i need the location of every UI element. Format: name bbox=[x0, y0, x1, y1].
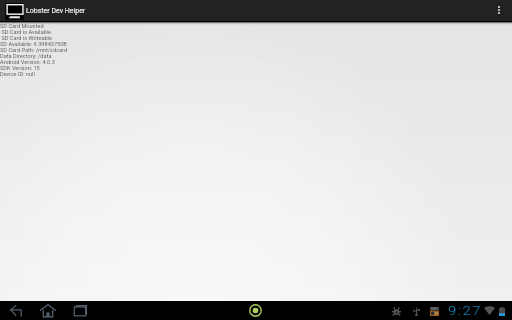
staticText: SD Available: 9.39843750B bbox=[0, 41, 67, 47]
staticText: Data Directory: /data bbox=[0, 53, 52, 59]
button[interactable]: Screen recording indicator bbox=[247, 301, 263, 320]
button[interactable]: Back bbox=[5, 301, 27, 320]
staticText: Lobster Dev Helper bbox=[26, 7, 86, 15]
staticText: SD Card is Writeable bbox=[0, 35, 52, 41]
button[interactable]: Home bbox=[40, 301, 56, 320]
staticText: SD Card Path: /mnt/sdcard bbox=[0, 47, 68, 53]
staticText: 9:27 bbox=[448, 304, 483, 318]
button[interactable]: More options bbox=[490, 0, 508, 21]
staticText: SD Card is Available bbox=[0, 29, 51, 35]
button[interactable]: Lobster Dev Helper, navigate up bbox=[0, 0, 512, 21]
staticText: Android Version: 4.0.3 bbox=[0, 59, 55, 65]
staticText: Device ID: null bbox=[0, 71, 35, 77]
button[interactable]: Recent apps bbox=[73, 301, 87, 320]
button[interactable]: System status bbox=[0, 301, 512, 320]
staticText: SD Card Mounted bbox=[0, 23, 44, 29]
staticText: SDK Version: 15 bbox=[0, 65, 40, 71]
